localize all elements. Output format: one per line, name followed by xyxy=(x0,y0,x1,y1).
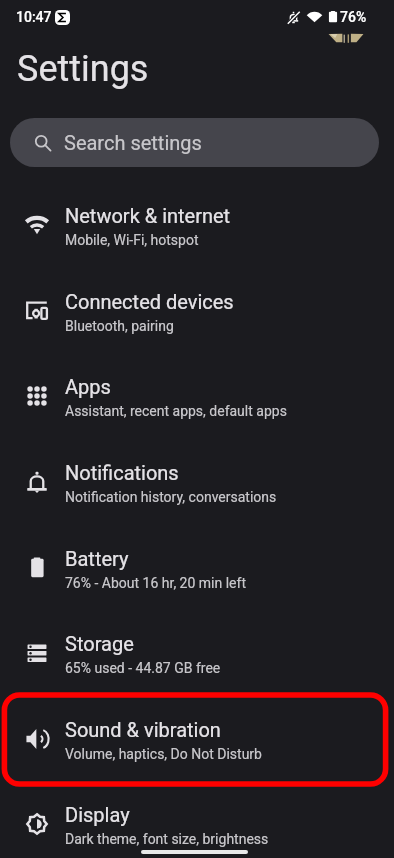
staticText: 10:47 xyxy=(16,9,52,25)
staticText: Display xyxy=(65,803,130,826)
staticText: Dark theme, font size, brightness xyxy=(65,831,269,847)
staticText: Sound & vibration xyxy=(65,718,221,741)
staticText: Notifications xyxy=(65,461,179,484)
button[interactable]: Storage xyxy=(0,610,394,696)
other: Notifications xyxy=(26,471,48,493)
button[interactable]: Apps xyxy=(0,353,394,439)
button[interactable]: Search settings xyxy=(10,118,379,167)
other: Battery xyxy=(26,557,48,579)
staticText: Battery xyxy=(65,547,129,570)
button[interactable]: Network and internet xyxy=(0,182,394,268)
staticText: Network & internet xyxy=(65,204,231,227)
button[interactable]: Display xyxy=(0,781,394,858)
staticText: Assistant, recent apps, default apps xyxy=(65,403,287,419)
staticText: Bluetooth, pairing xyxy=(65,318,174,334)
other: Connected devices xyxy=(26,300,48,322)
staticText: Volume, haptics, Do Not Disturb xyxy=(65,746,262,762)
staticText: Apps xyxy=(65,375,111,398)
other: Sound and vibration xyxy=(26,728,48,750)
other: Storage xyxy=(26,642,48,664)
button[interactable]: Sound and vibration xyxy=(0,696,394,782)
staticText: 76% - About 16 hr, 20 min left xyxy=(65,575,246,591)
staticText: Mobile, Wi-Fi, hotspot xyxy=(65,232,199,248)
other: Display xyxy=(26,813,48,835)
staticText: Notification history, conversations xyxy=(65,489,277,505)
staticText: Search settings xyxy=(64,131,202,154)
staticText: Settings xyxy=(17,48,149,90)
button[interactable]: Battery xyxy=(0,525,394,611)
staticText: Storage xyxy=(65,632,134,655)
other: Network and internet xyxy=(26,214,48,236)
staticText: Connected devices xyxy=(65,290,234,313)
staticText: 76% xyxy=(340,9,367,25)
staticText: 65% used - 44.87 GB free xyxy=(65,660,221,676)
button[interactable]: Connected devices xyxy=(0,268,394,354)
other: Apps xyxy=(26,385,48,407)
button[interactable]: Notifications xyxy=(0,439,394,525)
